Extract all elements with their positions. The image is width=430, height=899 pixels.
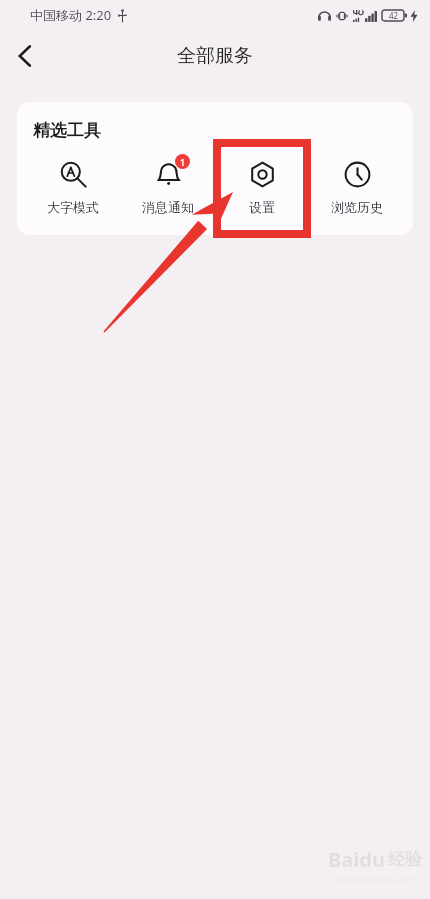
staticText: 1 [180,156,186,168]
staticText: 中国移动 2:20 [30,6,112,24]
staticText: 大字模式 [47,199,99,215]
staticText: Baidu [328,846,385,873]
button[interactable]: 浏览历史 [314,153,400,217]
staticText: 全部服务 [177,44,253,68]
button[interactable]: 1 [125,153,211,217]
staticText: 精选工具 [33,120,101,141]
staticText: 经验 [388,849,422,870]
button[interactable]: 设置 [219,153,305,217]
staticText: 消息通知 [142,199,194,215]
staticText: 浏览历史 [331,199,383,215]
button[interactable]: Back [0,32,48,80]
button[interactable]: 大字模式 [30,153,116,217]
staticText: 设置 [249,199,275,215]
staticText: 42 [389,10,399,21]
